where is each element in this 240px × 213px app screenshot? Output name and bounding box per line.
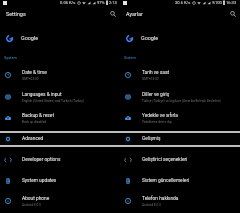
button[interactable]: Backup & reset	[0, 110, 120, 126]
button[interactable]: Geliştirici seçenekleri	[120, 152, 240, 168]
staticText: Google	[21, 35, 39, 41]
button[interactable]: Diller ve giriş	[120, 89, 240, 105]
staticText: Yedekleme devre dışı	[142, 120, 172, 124]
button[interactable]: Languages & input	[0, 89, 120, 105]
button[interactable]: System updates	[0, 173, 120, 189]
staticText: Android 8.0.0	[142, 203, 161, 207]
staticText: Diller ve giriş	[142, 92, 170, 98]
staticText: English (United States) and Turkish (Tur…	[22, 99, 84, 103]
button[interactable]: Gelişmiş	[120, 133, 240, 145]
staticText: System	[4, 55, 17, 59]
staticText: Gelişmiş	[142, 136, 161, 142]
staticText: About phone	[22, 196, 50, 202]
staticText: Sistem güncellemeleri	[142, 178, 190, 184]
staticText: 97%	[97, 0, 105, 5]
button[interactable]: Date & time	[0, 67, 120, 83]
button[interactable]: Search	[107, 8, 119, 20]
button[interactable]: Google	[120, 29, 240, 47]
button[interactable]: Developer options	[0, 152, 120, 168]
staticText: 30.6 K/s	[175, 0, 191, 5]
staticText: System updates	[22, 178, 57, 184]
staticText: Geliştirici seçenekleri	[142, 157, 188, 163]
staticText: Google	[141, 35, 159, 41]
staticText: Ayarlar	[126, 11, 143, 17]
button[interactable]: Search	[227, 8, 239, 20]
staticText: Backup & reset	[22, 113, 54, 119]
staticText: Sistem	[124, 55, 136, 59]
button[interactable]: Sistem güncellemeleri	[120, 173, 240, 189]
staticText: Advanced	[22, 136, 44, 142]
staticText: 0.06 K/s	[60, 0, 76, 5]
staticText: 2:13	[109, 0, 117, 5]
button[interactable]: Telefon hakkında	[120, 193, 240, 209]
staticText: Settings	[6, 11, 26, 17]
staticText: Tarih ve saat	[142, 70, 170, 76]
button[interactable]: Advanced	[0, 133, 120, 145]
staticText: 16:33	[226, 0, 237, 5]
button[interactable]: Google	[0, 29, 120, 47]
staticText: %100	[212, 0, 222, 5]
staticText: Türkçe (Türkiye) ve İngilizce (Amerika B…	[142, 99, 221, 103]
staticText: Languages & input	[22, 92, 62, 98]
staticText: Date & time	[22, 70, 47, 76]
staticText: Yedekle ve sıfırla	[142, 113, 178, 119]
button[interactable]: About phone	[0, 193, 120, 209]
staticText: GMT+03:00	[22, 77, 39, 81]
staticText: GMT+03:00	[142, 77, 159, 81]
staticText: Telefon hakkında	[142, 196, 179, 202]
button[interactable]: Yedekle ve sıfırla	[120, 110, 240, 126]
staticText: Developer options	[22, 157, 61, 163]
staticText: Back up disabled	[22, 120, 47, 124]
button[interactable]: Tarih ve saat	[120, 67, 240, 83]
staticText: Android 8.0.0	[22, 203, 41, 207]
